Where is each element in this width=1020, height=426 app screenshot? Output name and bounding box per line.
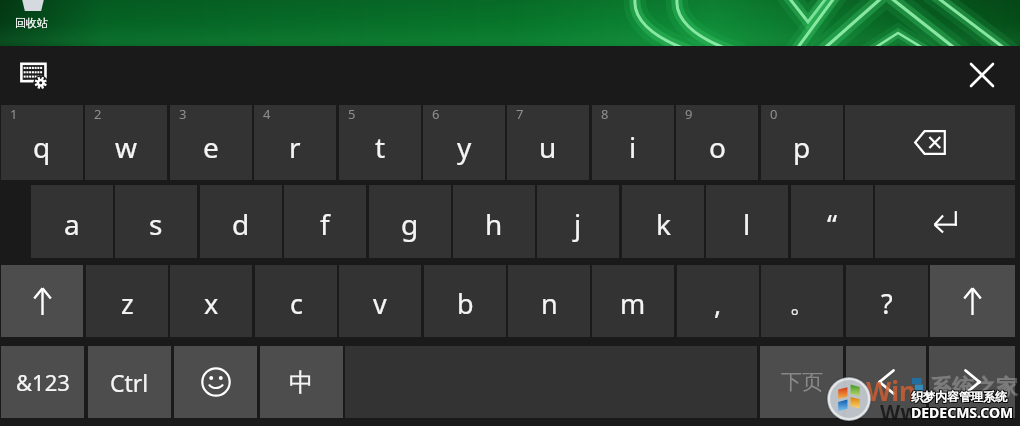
- button[interactable]: Ctrl: [88, 346, 171, 418]
- button[interactable]: 9: [676, 105, 758, 180]
- button[interactable]: x: [170, 265, 252, 337]
- button[interactable]: h: [453, 185, 535, 258]
- button[interactable]: Next candidate: [929, 346, 1015, 418]
- staticText: 织梦内容管理系统: [910, 388, 1006, 403]
- staticText: c: [290, 285, 303, 322]
- staticText: DEDECMS.COM: [912, 404, 1015, 423]
- button[interactable]: d: [200, 185, 282, 258]
- staticText: DEDECMS.COM: [911, 404, 1014, 423]
- button[interactable]: &123: [1, 346, 84, 418]
- staticText: DEDECMS.COM: [910, 403, 1013, 422]
- staticText: 。: [789, 286, 816, 320]
- staticText: y: [457, 128, 472, 166]
- staticText: o: [709, 128, 726, 166]
- button[interactable]: f: [284, 185, 366, 258]
- staticText: 织梦内容管理系统: [910, 390, 1006, 405]
- staticText: 织梦内容管理系统: [912, 388, 1008, 403]
- button[interactable]: Shift: [1, 265, 83, 337]
- button[interactable]: b: [424, 265, 506, 337]
- button[interactable]: 7: [507, 105, 589, 180]
- button[interactable]: “: [791, 185, 873, 258]
- button[interactable]: s: [115, 185, 197, 258]
- staticText: Win: [866, 373, 916, 408]
- button[interactable]: Previous candidate: [846, 346, 926, 418]
- button[interactable]: z: [86, 265, 168, 337]
- staticText: w: [115, 128, 138, 166]
- button[interactable]: Close: [958, 54, 1006, 96]
- staticText: 织梦内容管理系统: [910, 389, 1006, 404]
- button[interactable]: ,: [677, 265, 759, 337]
- button[interactable]: 0: [761, 105, 843, 180]
- staticText: r: [289, 128, 301, 166]
- button[interactable]: c: [255, 265, 337, 337]
- button[interactable]: a: [31, 185, 113, 258]
- button[interactable]: m: [592, 265, 674, 337]
- button[interactable]: 6: [423, 105, 505, 180]
- staticText: DEDECMS.COM: [912, 403, 1015, 422]
- staticText: “: [827, 205, 838, 243]
- staticText: 织梦内容管理系统: [911, 390, 1007, 405]
- button[interactable]: j: [537, 185, 619, 258]
- staticText: 5: [348, 105, 356, 123]
- button[interactable]: Enter: [875, 185, 1015, 258]
- button[interactable]: 下页: [760, 346, 843, 418]
- staticText: h: [485, 205, 503, 243]
- staticText: 中: [289, 367, 314, 398]
- staticText: d: [232, 205, 250, 243]
- staticText: 6: [432, 105, 440, 123]
- button[interactable]: v: [339, 265, 421, 337]
- button[interactable]: g: [369, 185, 451, 258]
- staticText: 7: [516, 105, 524, 123]
- staticText: 织梦内容管理系统: [911, 388, 1007, 403]
- staticText: 下页: [781, 369, 823, 395]
- button[interactable]: Keyboard settings: [12, 54, 56, 96]
- staticText: x: [204, 285, 219, 322]
- button[interactable]: 中: [260, 346, 343, 418]
- staticText: 织梦内容管理系统: [912, 390, 1008, 405]
- staticText: DEDECMS.COM: [912, 402, 1015, 421]
- staticText: m: [620, 285, 646, 322]
- staticText: b: [457, 285, 474, 322]
- staticText: q: [33, 128, 51, 166]
- button[interactable]: 。: [761, 265, 843, 337]
- staticText: p: [793, 128, 811, 166]
- staticText: g: [401, 205, 419, 243]
- button[interactable]: ?: [846, 265, 928, 337]
- staticText: 8: [601, 105, 609, 123]
- staticText: z: [121, 285, 134, 322]
- staticText: 4: [263, 105, 271, 123]
- button[interactable]: 3: [170, 105, 252, 180]
- staticText: e: [203, 128, 219, 166]
- staticText: l: [743, 205, 751, 243]
- button[interactable]: Emoji: [174, 346, 257, 418]
- staticText: DEDECMS.COM: [911, 403, 1014, 422]
- staticText: DEDECMS.COM: [910, 404, 1013, 423]
- staticText: 0: [770, 105, 778, 123]
- button[interactable]: 5: [339, 105, 421, 180]
- staticText: 9: [685, 105, 693, 123]
- button[interactable]: n: [508, 265, 590, 337]
- button[interactable]: 1: [1, 105, 83, 180]
- staticText: t: [375, 128, 386, 166]
- button[interactable]: 8: [592, 105, 674, 180]
- staticText: &123: [16, 367, 70, 397]
- button[interactable]: 2: [85, 105, 167, 180]
- staticText: 回收站: [15, 16, 48, 30]
- button[interactable]: Shift: [930, 265, 1015, 337]
- staticText: a: [64, 205, 80, 243]
- staticText: ?: [881, 285, 893, 322]
- button[interactable]: Backspace: [845, 105, 1015, 180]
- button[interactable]: 4: [254, 105, 336, 180]
- staticText: i: [629, 128, 637, 166]
- staticText: ,: [714, 285, 722, 322]
- button[interactable]: l: [706, 185, 788, 258]
- staticText: 系统之家: [930, 374, 1018, 402]
- staticText: n: [541, 285, 558, 322]
- staticText: Ctrl: [110, 367, 149, 398]
- staticText: Www.: [880, 398, 942, 426]
- staticText: 3: [179, 105, 187, 123]
- staticText: DEDECMS.COM: [910, 402, 1013, 421]
- button[interactable]: k: [622, 185, 704, 258]
- staticText: s: [149, 205, 163, 243]
